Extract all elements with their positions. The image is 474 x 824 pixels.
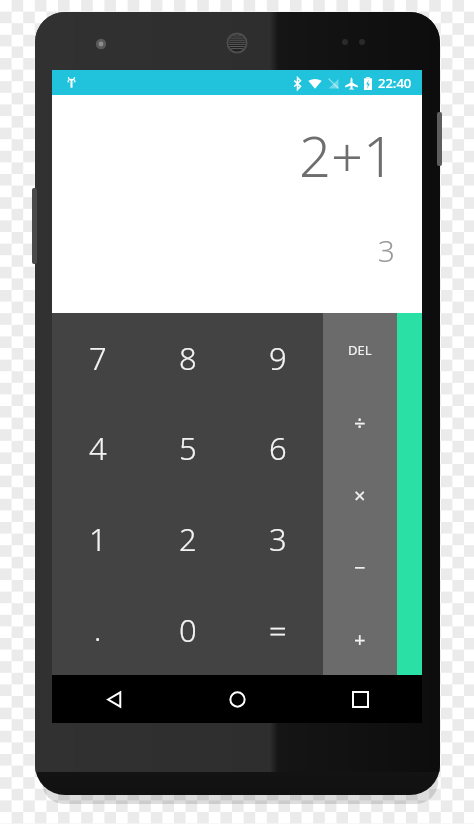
button[interactable]: 5 <box>143 403 233 493</box>
button[interactable]: DEL <box>323 313 397 386</box>
staticText: 0 <box>179 609 197 651</box>
button[interactable]: . <box>52 584 143 675</box>
staticText: + <box>354 626 366 653</box>
button[interactable]: ÷ <box>323 386 397 459</box>
button[interactable]: 2 <box>143 493 233 584</box>
button[interactable]: 8 <box>143 313 233 403</box>
staticText: 2+1 <box>299 117 395 193</box>
button[interactable]: Back <box>52 675 176 723</box>
staticText: 7 <box>89 337 107 379</box>
button[interactable]: × <box>323 459 397 531</box>
button[interactable]: 0 <box>143 584 233 675</box>
button[interactable]: + <box>323 603 397 675</box>
button[interactable]: − <box>323 531 397 603</box>
staticText: 2 <box>179 518 197 560</box>
button[interactable]: 9 <box>233 313 323 403</box>
button[interactable]: 7 <box>52 313 143 403</box>
staticText: 5 <box>179 427 197 469</box>
button[interactable]: 6 <box>233 403 323 493</box>
staticText: 3 <box>377 230 395 271</box>
staticText: ÷ <box>354 409 366 436</box>
staticText: 8 <box>179 337 197 379</box>
staticText: × <box>354 482 366 509</box>
staticText: DEL <box>348 341 372 359</box>
button[interactable]: = <box>233 584 323 675</box>
button[interactable]: 1 <box>52 493 143 584</box>
button[interactable]: Recent apps <box>299 675 422 723</box>
staticText: 1 <box>89 518 107 560</box>
staticText: 3 <box>269 518 287 560</box>
staticText: 4 <box>89 427 107 469</box>
staticText: − <box>354 554 366 581</box>
staticText: 6 <box>269 427 287 469</box>
staticText: 22:40 <box>378 74 412 92</box>
button[interactable]: 4 <box>52 403 143 493</box>
staticText: 9 <box>269 337 287 379</box>
staticText: . <box>94 609 102 650</box>
button[interactable]: Home <box>176 675 299 723</box>
button[interactable]: 3 <box>233 493 323 584</box>
staticText: = <box>269 609 287 651</box>
